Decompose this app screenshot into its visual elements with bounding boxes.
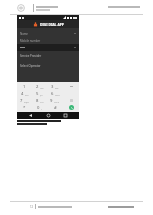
button[interactable]: * bbox=[17, 104, 32, 111]
staticText: 4 bbox=[21, 91, 24, 97]
staticText: DIGI DIAL APP bbox=[40, 22, 64, 27]
staticText: TUV bbox=[40, 101, 44, 104]
staticText: Mobile number bbox=[20, 39, 41, 43]
button[interactable]: Name bbox=[17, 30, 79, 37]
staticText: # bbox=[54, 105, 57, 111]
staticText: 5 bbox=[36, 91, 39, 97]
button[interactable]: 9 bbox=[47, 97, 63, 104]
button[interactable]: 3 bbox=[47, 83, 63, 90]
staticText: PQRS bbox=[24, 101, 29, 104]
button[interactable]: Back bbox=[26, 112, 35, 119]
button[interactable]: Home bbox=[44, 112, 53, 119]
button[interactable]: 8 bbox=[32, 97, 47, 104]
staticText: 3 bbox=[51, 84, 54, 90]
staticText: WXYZ bbox=[54, 101, 60, 104]
button[interactable]: Select Operator bbox=[17, 64, 79, 70]
staticText: 7 bbox=[20, 98, 23, 104]
button[interactable]: 5 bbox=[32, 90, 47, 97]
button[interactable]: 7 bbox=[17, 97, 32, 104]
button[interactable]: Service Provider bbox=[17, 54, 79, 60]
button[interactable]: 4 bbox=[17, 90, 32, 97]
button[interactable]: 6 bbox=[47, 90, 63, 97]
staticText: MNO bbox=[55, 94, 60, 97]
button[interactable]: # bbox=[47, 104, 63, 111]
staticText: Name bbox=[20, 32, 28, 36]
staticText: DEF bbox=[55, 87, 59, 90]
staticText: 8 bbox=[36, 98, 39, 104]
staticText: 6 bbox=[51, 91, 54, 97]
staticText: 0 bbox=[37, 105, 40, 111]
staticText: 2 bbox=[36, 84, 39, 90]
staticText: Service Provider bbox=[20, 54, 42, 58]
staticText: * bbox=[23, 105, 26, 111]
staticText: GHI bbox=[25, 94, 29, 97]
staticText: ABC bbox=[40, 87, 44, 90]
staticText: 1 bbox=[23, 84, 26, 90]
button[interactable] bbox=[17, 44, 79, 51]
button[interactable]: 1 bbox=[17, 83, 32, 90]
staticText: + bbox=[41, 108, 43, 111]
button[interactable]: Recents bbox=[61, 112, 70, 119]
button[interactable]: Mobile number bbox=[17, 37, 79, 44]
button[interactable]: 0 bbox=[32, 104, 47, 111]
staticText: 9 bbox=[50, 98, 53, 104]
button[interactable]: 2 bbox=[32, 83, 47, 90]
staticText: Select Operator bbox=[20, 64, 41, 68]
staticText: 12 bbox=[30, 205, 33, 209]
staticText: JKL bbox=[40, 94, 43, 97]
button[interactable]: Call bbox=[69, 105, 74, 110]
